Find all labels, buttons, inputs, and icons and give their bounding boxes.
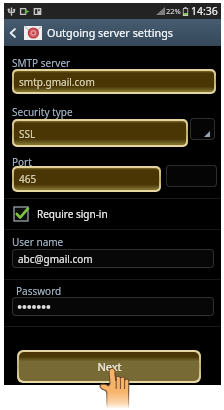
button[interactable]: smtp.gmail.com [14,71,214,92]
button[interactable]: Open dropdown [191,119,214,139]
staticText: SSL [19,127,36,141]
button[interactable]: SSL [14,121,186,145]
staticText: abc@gmail.com [18,252,93,266]
staticText: Password [16,284,62,298]
staticText: Security type [12,105,73,119]
staticText: smtp.gmail.com [19,75,95,89]
staticText: 22% [166,6,181,16]
staticText: 14:36 [191,4,218,18]
button[interactable]: 465 [14,168,159,190]
button[interactable]: Require sign-in [14,207,108,221]
staticText: User name [12,235,64,249]
staticText: Next [97,359,122,374]
button[interactable]: abc@gmail.com [13,250,213,267]
button[interactable]: Next [19,352,199,381]
staticText: SMTP server [12,56,71,70]
button[interactable]: App icon [22,19,44,46]
staticText: 465 [19,172,37,186]
button[interactable] [13,298,213,315]
staticText: Outgoing server settings [47,25,173,40]
staticText: Require sign-in [37,207,108,221]
button[interactable]: Back [4,19,22,46]
staticText: Port [12,155,32,169]
